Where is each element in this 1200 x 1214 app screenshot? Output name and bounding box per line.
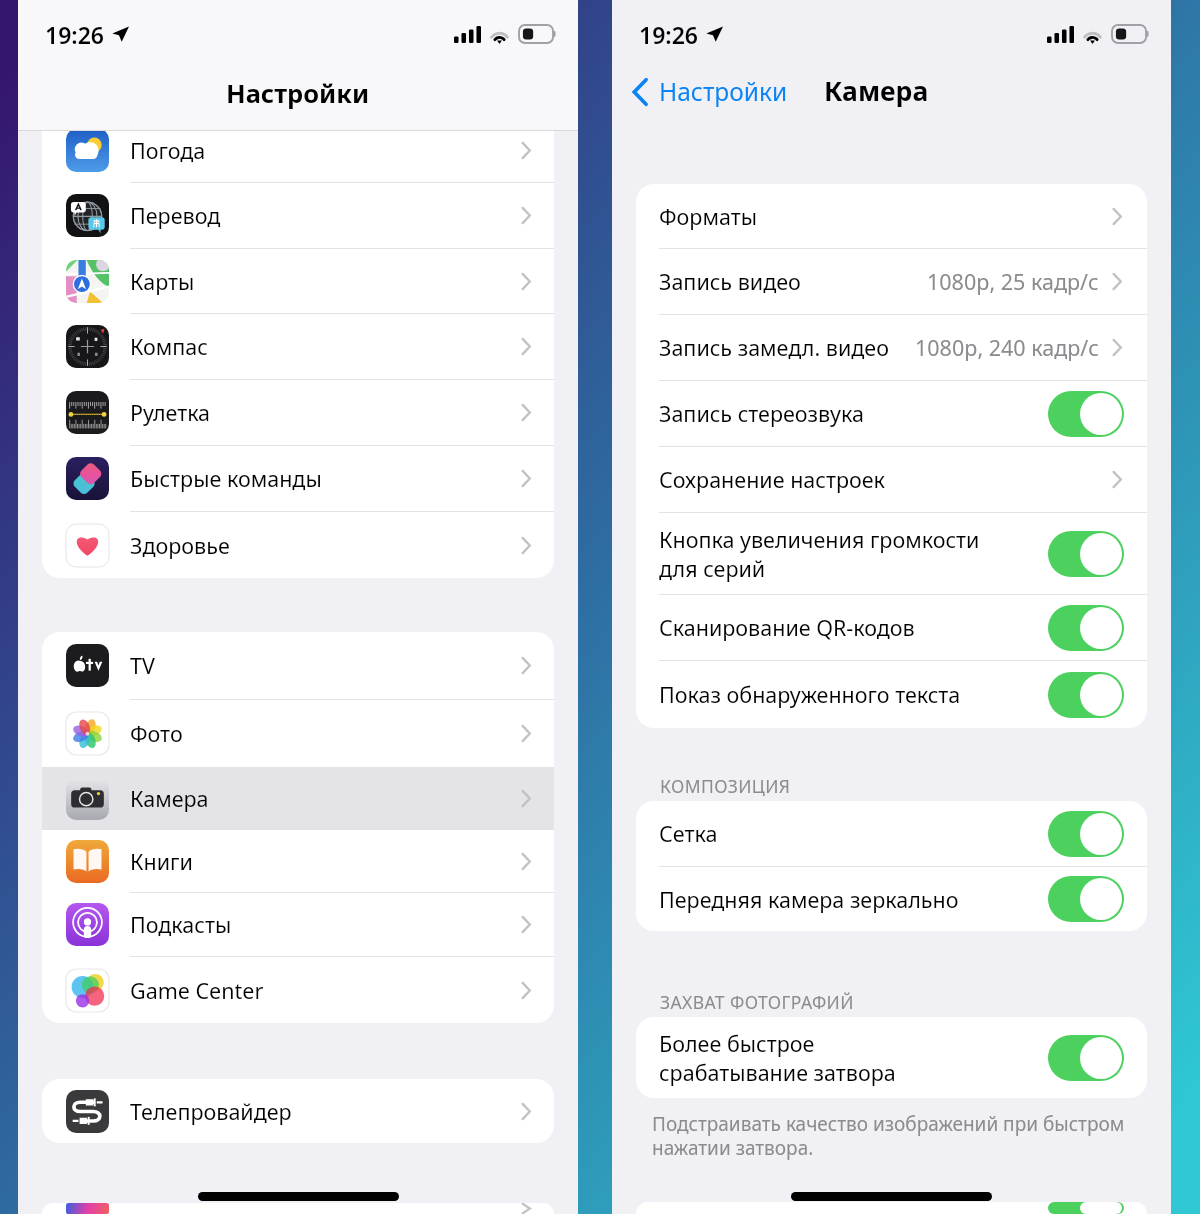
staticText: Компас: [130, 332, 208, 361]
button[interactable]: Back to Настройки: [624, 75, 796, 108]
staticText: Кнопка увеличения громкости: [659, 525, 980, 554]
staticText: Камера: [130, 784, 209, 813]
button[interactable]: Фото: [42, 700, 554, 767]
button[interactable]: Здоровье: [42, 512, 554, 578]
button[interactable]: Компас: [42, 314, 554, 380]
staticText: Запись стереозвука: [659, 399, 864, 428]
button[interactable]: Камера: [42, 767, 554, 830]
button[interactable]: Game Center: [42, 957, 554, 1023]
staticText: Показ обнаруженного текста: [659, 680, 961, 709]
staticText: Подкасты: [130, 910, 232, 939]
button[interactable]: Рулетка: [42, 380, 554, 446]
staticText: Форматы: [659, 202, 757, 231]
staticText: Телепровайдер: [130, 1097, 292, 1126]
staticText: срабатывание затвора: [659, 1058, 896, 1087]
button[interactable]: Toggle on: [1048, 811, 1124, 857]
staticText: Карты: [130, 267, 195, 296]
staticText: Рулетка: [130, 398, 211, 427]
staticText: 19:26: [639, 19, 698, 50]
button[interactable]: Погода: [42, 131, 554, 183]
button[interactable]: Toggle on: [1048, 391, 1124, 437]
staticText: 1080p, 240 кадр/с: [915, 333, 1099, 362]
button[interactable]: Запись видео: [636, 249, 1147, 315]
button[interactable]: Кнопка увеличения громкости: [636, 513, 1147, 595]
button[interactable]: Форматы: [636, 184, 1147, 249]
staticText: Настройки: [659, 75, 788, 108]
button[interactable]: Подкасты: [42, 893, 554, 957]
button[interactable]: Сканирование QR-кодов: [636, 595, 1147, 661]
button[interactable]: Сохранение настроек: [636, 447, 1147, 513]
staticText: для серий: [659, 554, 766, 583]
staticText: Запись замедл. видео: [659, 333, 889, 362]
staticText: Подстраивать качество изображений при бы…: [652, 1111, 1131, 1160]
staticText: Перевод: [130, 201, 221, 230]
staticText: Быстрые команды: [130, 464, 322, 493]
button[interactable]: Запись стереозвука: [636, 381, 1147, 447]
button[interactable]: Toggle on: [1048, 605, 1124, 651]
staticText: Запись видео: [659, 267, 801, 296]
staticText: КОМПОЗИЦИЯ: [660, 774, 791, 798]
button[interactable]: Запись замедл. видео: [636, 315, 1147, 381]
button[interactable]: TV: [42, 632, 554, 700]
button[interactable]: Передняя камера зеркально: [636, 867, 1147, 931]
button[interactable]: Показ обнаруженного текста: [636, 661, 1147, 728]
staticText: 19:26: [45, 19, 104, 50]
button[interactable]: Перевод: [42, 183, 554, 249]
button[interactable]: Toggle on: [1048, 876, 1124, 922]
staticText: Сетка: [659, 819, 718, 848]
staticText: Камера: [824, 73, 929, 109]
button[interactable]: App settings: [42, 1203, 554, 1214]
button[interactable]: Toggle on: [1048, 1035, 1124, 1081]
staticText: Погода: [130, 136, 206, 165]
staticText: 1080p, 25 кадр/с: [927, 267, 1099, 296]
button[interactable]: Toggle on: [1048, 672, 1124, 718]
staticText: Передняя камера зеркально: [659, 885, 959, 914]
button[interactable]: Смарт-HDR: [636, 1202, 1147, 1214]
staticText: Фото: [130, 719, 183, 748]
button[interactable]: Более быстрое: [636, 1017, 1147, 1098]
button[interactable]: Быстрые команды: [42, 446, 554, 512]
staticText: Книги: [130, 847, 193, 876]
button[interactable]: Карты: [42, 249, 554, 314]
button[interactable]: Toggle on: [1048, 1202, 1124, 1214]
button[interactable]: Книги: [42, 830, 554, 893]
staticText: Сохранение настроек: [659, 465, 886, 494]
staticText: Здоровье: [130, 531, 230, 560]
staticText: Сканирование QR-кодов: [659, 613, 915, 642]
button[interactable]: Toggle on: [1048, 531, 1124, 577]
staticText: Более быстрое: [659, 1029, 815, 1058]
staticText: ЗАХВАТ ФОТОГРАФИЙ: [660, 990, 854, 1014]
staticText: TV: [130, 651, 155, 680]
staticText: Game Center: [130, 976, 264, 1005]
staticText: Настройки: [226, 76, 370, 111]
button[interactable]: Телепровайдер: [42, 1079, 554, 1143]
button[interactable]: Сетка: [636, 801, 1147, 867]
